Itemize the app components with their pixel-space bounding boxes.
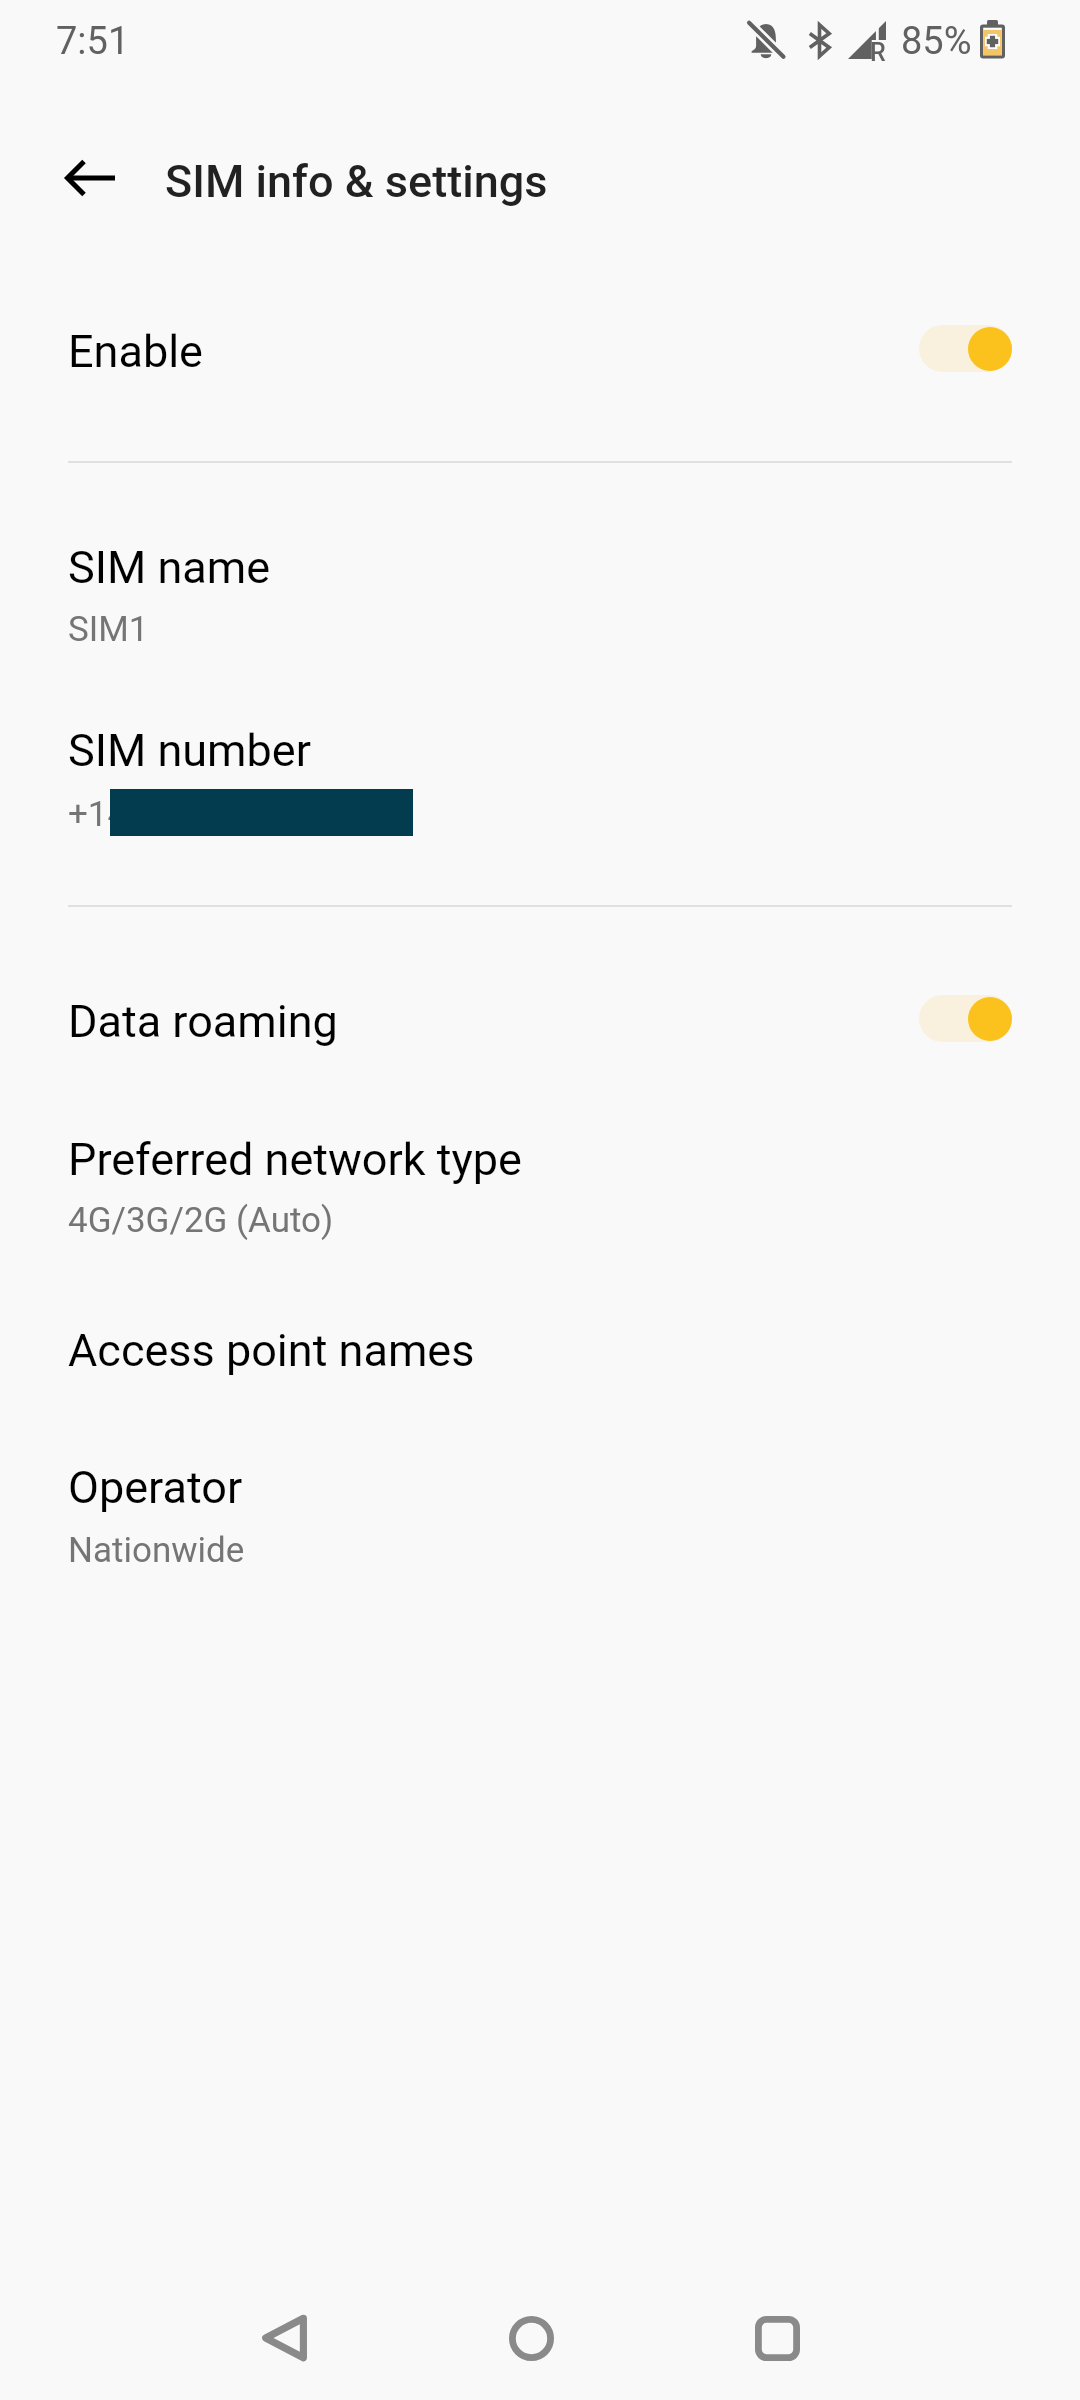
button[interactable]: SIM number bbox=[0, 690, 1080, 870]
button[interactable]: Recent apps bbox=[717, 2278, 837, 2398]
button[interactable]: Navigate up bbox=[42, 130, 138, 226]
staticText: Nationwide bbox=[68, 1530, 245, 1571]
button[interactable]: Data roaming bbox=[0, 949, 1080, 1085]
button[interactable]: Access point names bbox=[0, 1283, 1080, 1393]
staticText: R bbox=[870, 38, 886, 67]
staticText: SIM name bbox=[68, 541, 271, 594]
staticText: SIM info & settings bbox=[165, 155, 548, 208]
button[interactable]: Home bbox=[471, 2278, 591, 2398]
staticText: +14 bbox=[68, 794, 128, 835]
staticText: 85% bbox=[901, 19, 972, 64]
staticText: Data roaming bbox=[68, 995, 338, 1048]
button[interactable]: Back bbox=[225, 2278, 345, 2398]
staticText: Enable bbox=[68, 325, 203, 378]
button[interactable]: Operator bbox=[0, 1420, 1080, 1596]
staticText: Preferred network type bbox=[68, 1133, 522, 1186]
staticText: 4G/3G/2G (Auto) bbox=[68, 1200, 334, 1241]
button[interactable]: SIM name bbox=[0, 500, 1080, 670]
staticText: 7:51 bbox=[56, 19, 130, 64]
button[interactable]: Enable bbox=[0, 279, 1080, 415]
staticText: Access point names bbox=[68, 1324, 475, 1377]
staticText: Operator bbox=[68, 1461, 243, 1514]
staticText: SIM1 bbox=[68, 609, 149, 650]
button[interactable]: Preferred network type bbox=[0, 1092, 1080, 1262]
staticText: SIM number bbox=[68, 724, 311, 777]
